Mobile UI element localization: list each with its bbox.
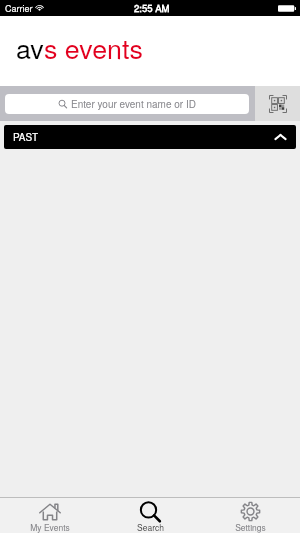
staticText: PAST	[13, 130, 39, 144]
staticText: av	[16, 28, 44, 66]
staticText: Enter your event name or ID	[71, 97, 196, 111]
staticText: My Events	[30, 521, 70, 533]
button[interactable]: PAST	[4, 125, 296, 149]
staticText: 2:55 AM	[134, 1, 170, 15]
staticText: s events	[44, 28, 143, 66]
button[interactable]: My Events	[0, 498, 100, 533]
button[interactable]: Settings	[200, 498, 300, 533]
staticText: Settings	[235, 521, 266, 533]
button[interactable]: Scan QR code	[255, 86, 300, 121]
button[interactable]: Enter your event name or ID	[5, 94, 249, 114]
button[interactable]: Search	[100, 498, 200, 533]
staticText: Search	[137, 521, 164, 533]
staticText: Carrier	[5, 2, 33, 15]
